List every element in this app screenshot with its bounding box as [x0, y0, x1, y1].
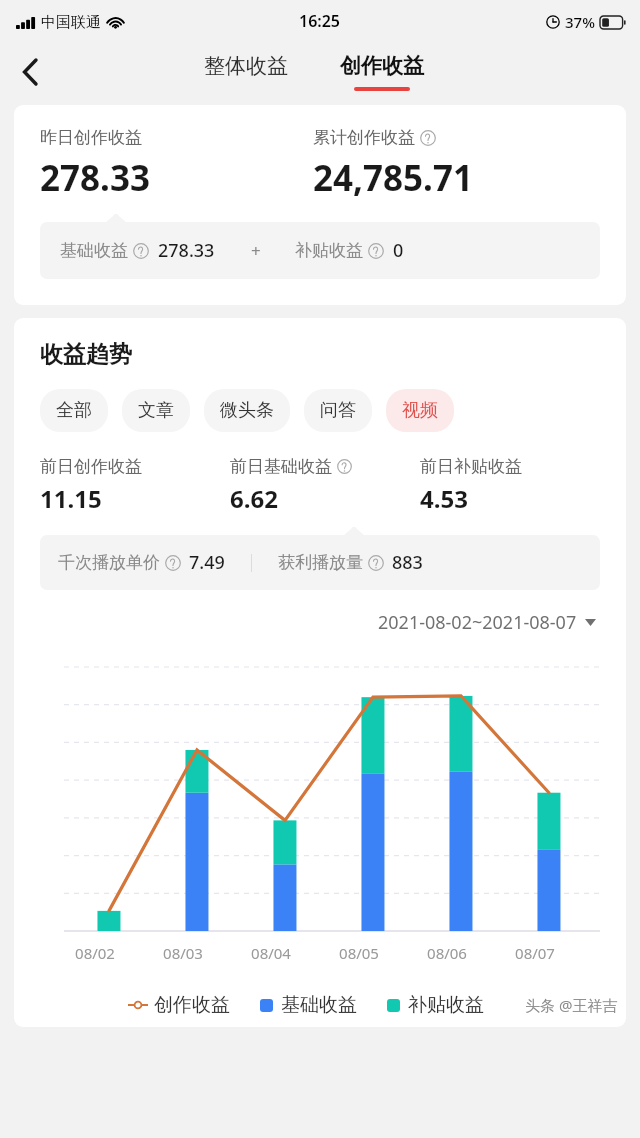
staticText: 获利播放量: [278, 552, 363, 573]
staticText: 微头条: [220, 399, 274, 422]
staticText: 累计创作收益: [313, 127, 415, 148]
staticText: 前日创作收益: [40, 456, 142, 477]
staticText: 2021-08-02~2021-08-07: [378, 610, 577, 635]
staticText: 08/06: [412, 943, 482, 963]
staticText: 创作收益: [340, 53, 424, 79]
staticText: 0: [393, 238, 404, 263]
staticText: 整体收益: [204, 53, 288, 79]
staticText: 7.49: [189, 550, 225, 575]
staticText: 4.53: [420, 482, 468, 515]
button[interactable]: 补贴收益: [387, 993, 484, 1017]
staticText: 全部: [56, 399, 92, 422]
button[interactable]: 问答: [304, 389, 372, 432]
staticText: 补贴收益: [295, 240, 363, 261]
button[interactable]: Back: [8, 50, 52, 94]
button[interactable]: 文章: [122, 389, 190, 432]
staticText: 6.62: [230, 482, 278, 515]
staticText: 278.33: [40, 154, 150, 202]
staticText: 视频: [402, 399, 438, 422]
staticText: 08/05: [324, 943, 394, 963]
staticText: 前日基础收益: [230, 456, 332, 477]
button[interactable]: 创作收益: [326, 47, 438, 97]
staticText: 文章: [138, 399, 174, 422]
staticText: 千次播放单价: [58, 552, 160, 573]
staticText: +: [251, 239, 261, 262]
button[interactable]: 创作收益: [128, 993, 230, 1017]
staticText: 08/02: [60, 943, 130, 963]
staticText: 补贴收益: [408, 993, 484, 1017]
staticText: 昨日创作收益: [40, 127, 142, 148]
staticText: 中国联通: [41, 13, 101, 32]
button[interactable]: 基础收益: [260, 993, 357, 1017]
button[interactable]: 视频: [386, 389, 454, 432]
staticText: 37%: [565, 12, 595, 32]
staticText: 11.15: [40, 482, 102, 515]
staticText: 08/07: [500, 943, 570, 963]
staticText: 基础收益: [281, 993, 357, 1017]
staticText: 收益趋势: [40, 340, 132, 369]
staticText: 16:25: [299, 10, 341, 32]
button[interactable]: 千次播放单价: [40, 535, 600, 590]
staticText: 24,785.71: [313, 154, 473, 202]
button[interactable]: 全部: [40, 389, 108, 432]
staticText: 08/03: [148, 943, 218, 963]
button[interactable]: 基础收益: [40, 222, 600, 279]
staticText: 08/04: [236, 943, 306, 963]
staticText: 基础收益: [60, 240, 128, 261]
button[interactable]: 整体收益: [190, 47, 302, 85]
button[interactable]: 2021-08-02~2021-08-07: [374, 606, 600, 639]
staticText: 创作收益: [154, 993, 230, 1017]
staticText: 头条 @王祥吉: [525, 995, 618, 1015]
staticText: 883: [392, 550, 423, 575]
button[interactable]: 微头条: [204, 389, 290, 432]
staticText: 前日补贴收益: [420, 456, 522, 477]
staticText: 278.33: [158, 238, 215, 263]
staticText: 问答: [320, 399, 356, 422]
